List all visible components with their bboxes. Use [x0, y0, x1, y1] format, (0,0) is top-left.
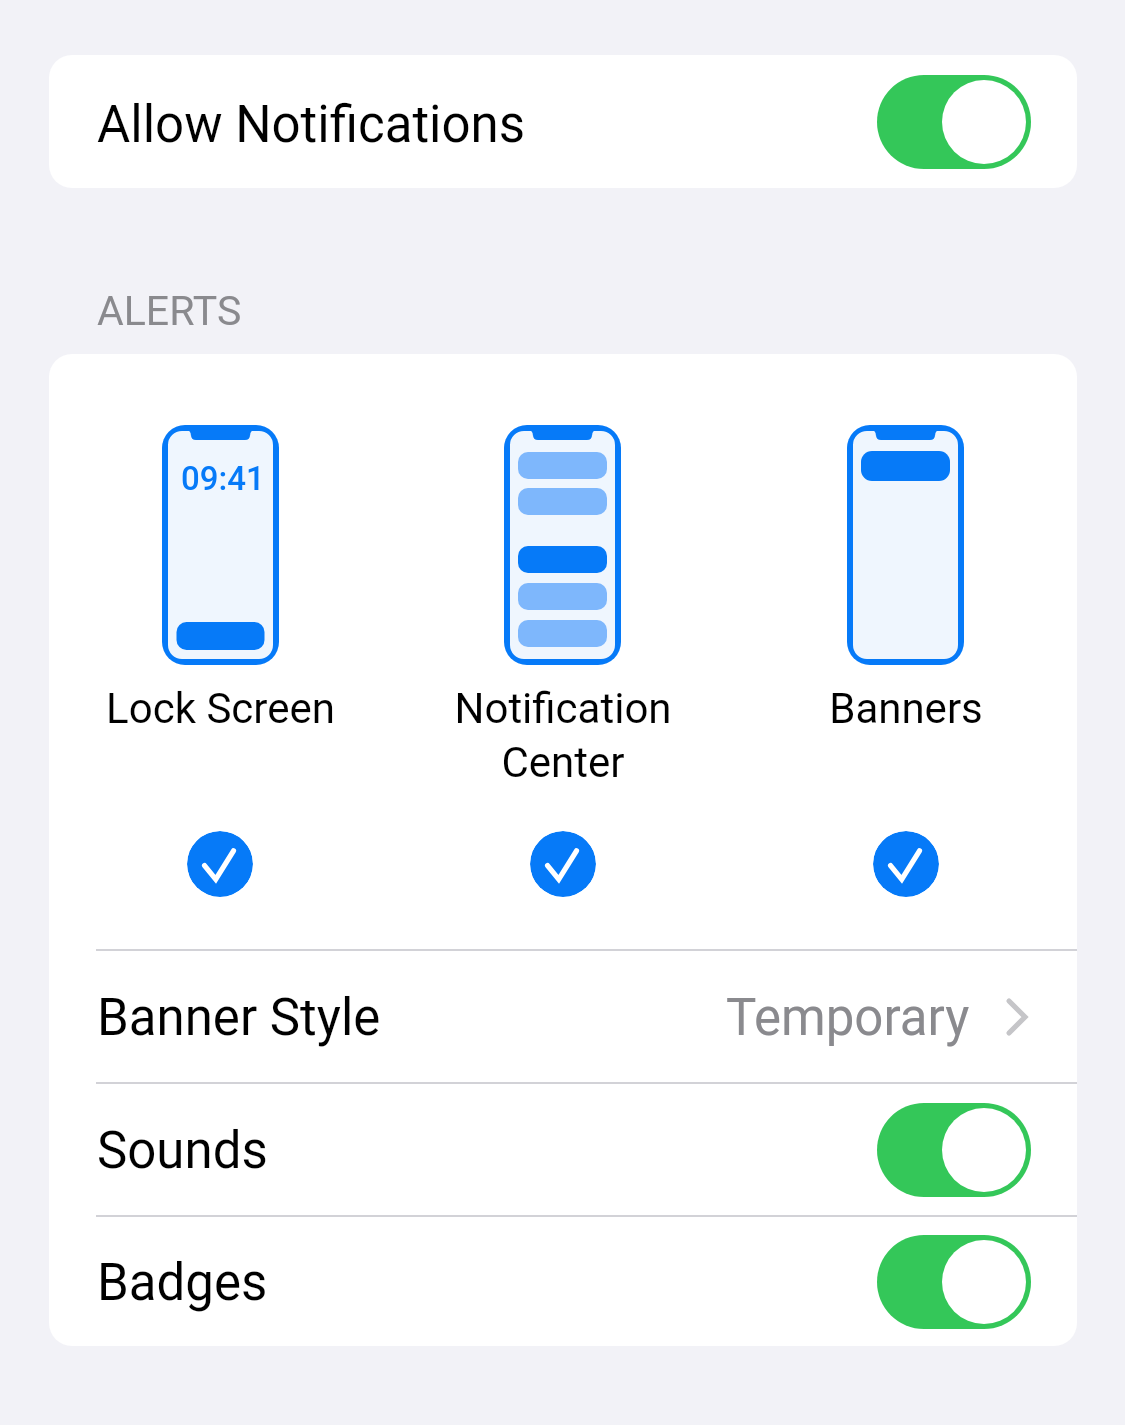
button[interactable]: Toggle on [877, 1103, 1031, 1197]
staticText: 09:41 [181, 459, 265, 498]
button[interactable]: Toggle on [877, 1235, 1031, 1329]
staticText: Banner Style [97, 988, 381, 1048]
button[interactable]: Banner Style [49, 951, 1077, 1082]
staticText: Allow Notifications [97, 95, 526, 155]
button[interactable]: Sounds [49, 1084, 1077, 1215]
staticText: Temporary [726, 988, 970, 1048]
staticText: Notification Center [454, 684, 672, 787]
button[interactable]: Toggle on [877, 75, 1031, 169]
button[interactable]: Badges [49, 1217, 1077, 1346]
button[interactable]: Notification Center [391, 354, 734, 787]
button[interactable]: Selected [187, 831, 253, 897]
staticText: ALERTS [97, 287, 242, 335]
staticText: Banners [829, 684, 983, 733]
button[interactable]: Selected [873, 831, 939, 897]
button[interactable]: Banners [734, 354, 1077, 733]
staticText: Badges [97, 1253, 268, 1313]
button[interactable]: Selected [530, 831, 596, 897]
staticText: Lock Screen [106, 684, 335, 733]
button[interactable]: Allow Notifications [49, 55, 1077, 188]
button[interactable]: 09:41 [49, 354, 391, 733]
staticText: Sounds [97, 1121, 268, 1181]
